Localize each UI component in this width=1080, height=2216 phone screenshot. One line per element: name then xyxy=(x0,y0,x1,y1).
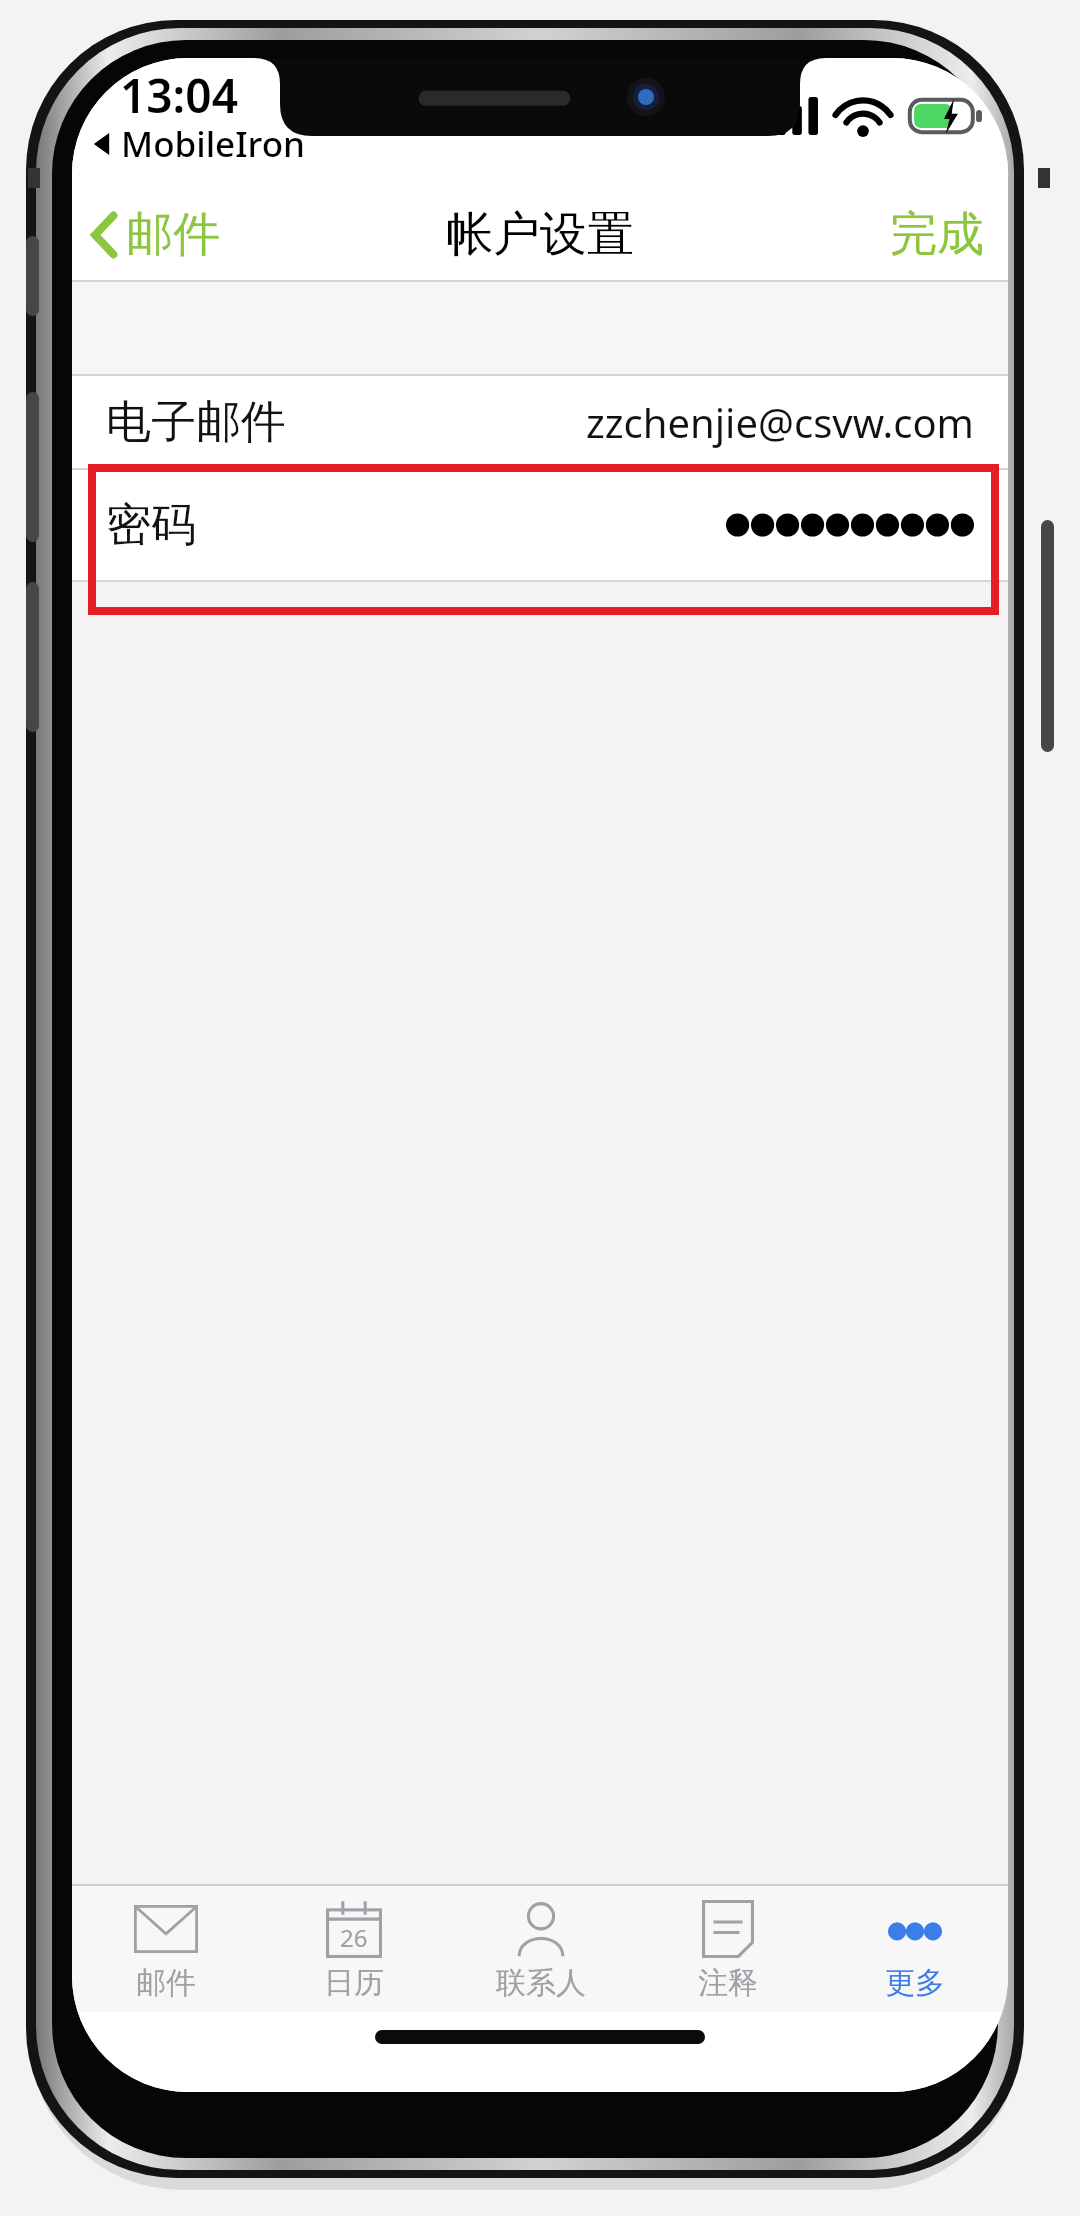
staticText: 完成 xyxy=(890,205,984,264)
button[interactable]: 密码 xyxy=(72,470,1008,580)
staticText: 13:04 xyxy=(120,64,238,127)
button[interactable]: 电子邮件 xyxy=(72,376,1008,468)
staticText: 更多 xyxy=(885,1964,945,2002)
staticText: 26 xyxy=(340,1921,368,1954)
button[interactable]: 邮件 xyxy=(82,197,228,272)
staticText: 联系人 xyxy=(496,1964,586,2002)
staticText: 邮件 xyxy=(136,1964,196,2002)
staticText: zzchenjie@csvw.com xyxy=(586,395,974,449)
button[interactable]: 完成 xyxy=(880,195,994,274)
button[interactable]: Notes xyxy=(634,1886,821,2012)
staticText: 日历 xyxy=(324,1964,384,2002)
staticText: 注释 xyxy=(698,1964,758,2002)
button[interactable]: Calendar xyxy=(260,1886,447,2012)
staticText: MobileIron xyxy=(121,120,306,168)
staticText: 电子邮件 xyxy=(106,394,286,451)
staticText: 邮件 xyxy=(126,205,220,264)
staticText: 密码 xyxy=(106,497,196,554)
button[interactable]: Mail xyxy=(72,1886,260,2012)
button[interactable]: More xyxy=(821,1886,1008,2012)
staticText: 帐户设置 xyxy=(446,205,634,264)
button[interactable]: Contacts xyxy=(447,1886,634,2012)
